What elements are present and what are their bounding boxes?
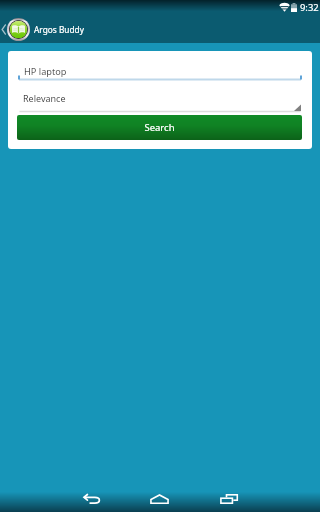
staticText: Relevance — [23, 92, 66, 104]
button[interactable]: Relevance — [8, 87, 312, 115]
button[interactable]: Back — [57, 474, 125, 512]
button[interactable]: HP laptop — [8, 51, 312, 87]
staticText: Search — [144, 121, 175, 134]
staticText: 9:32 — [300, 1, 319, 14]
button[interactable]: Home — [125, 474, 194, 512]
button[interactable]: Search — [17, 115, 302, 140]
staticText: Argos Buddy — [34, 24, 84, 35]
staticText: HP laptop — [24, 65, 67, 78]
button[interactable]: Recent apps — [194, 474, 263, 512]
button[interactable]: Navigate up — [0, 16, 34, 43]
